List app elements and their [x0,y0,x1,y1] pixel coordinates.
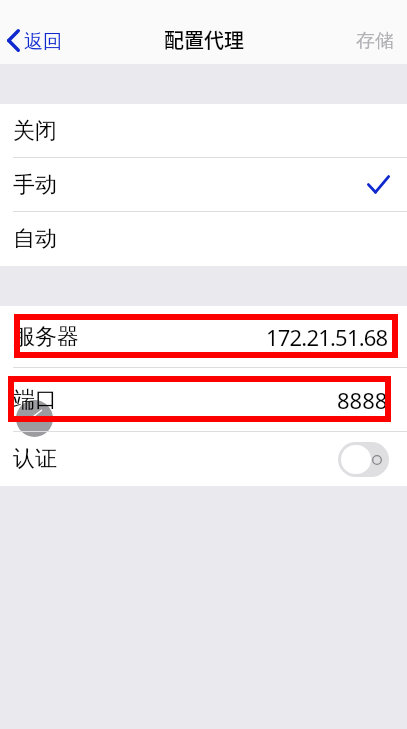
staticText: 配置代理 [164,25,244,54]
button[interactable]: 存储 [356,29,407,64]
staticText: 关闭 [13,117,57,145]
staticText: 自动 [13,225,57,253]
button[interactable]: Authentication toggle, off [338,442,389,477]
staticText: 172.21.51.68 [266,322,388,352]
button[interactable]: 端口 [0,368,407,432]
staticText: 服务器 [13,323,79,351]
button[interactable]: 手动 [0,158,407,212]
staticText: 8888 [337,385,388,415]
button[interactable]: 自动 [0,212,407,266]
button[interactable]: 服务器 [0,306,407,368]
staticText: 端口 [13,386,57,414]
button[interactable]: 返回 [5,25,64,55]
staticText: 认证 [13,445,57,473]
staticText: 手动 [13,171,57,199]
button[interactable]: 关闭 [0,104,407,158]
staticText: 返回 [24,30,62,54]
